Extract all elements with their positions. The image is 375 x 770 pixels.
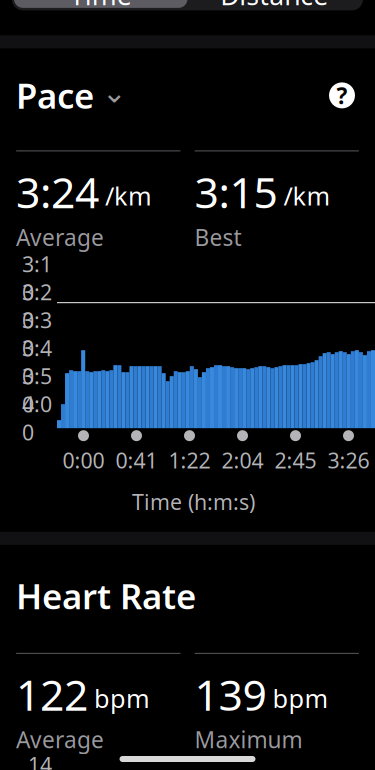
staticText: 1:22 — [168, 446, 210, 474]
staticText: 3:24 — [16, 163, 99, 220]
staticText: bpm — [94, 681, 150, 715]
staticText: 2:04 — [221, 446, 263, 474]
staticText: Best — [194, 222, 241, 252]
staticText: 0:00 — [62, 446, 104, 474]
staticText: 2:45 — [274, 446, 316, 474]
staticText: Average — [16, 724, 104, 755]
staticText: 139 — [194, 666, 266, 723]
staticText: Distance — [220, 0, 328, 13]
staticText: 3:20 — [22, 278, 52, 334]
staticText: 3:10 — [22, 250, 52, 306]
staticText: /km — [105, 179, 152, 212]
staticText: 3:40 — [22, 334, 52, 390]
staticText: Maximum — [194, 724, 302, 755]
button[interactable]: Time — [14, 0, 187, 8]
staticText: Average — [16, 222, 104, 252]
staticText: ? — [336, 80, 347, 110]
staticText: 3:15 — [194, 163, 277, 220]
staticText: 122 — [16, 666, 88, 723]
button[interactable]: Pace — [16, 70, 127, 120]
staticText: Heart Rate — [16, 573, 196, 619]
staticText: 4:00 — [22, 390, 52, 446]
staticText: ⌄ — [102, 76, 127, 109]
button[interactable]: Help about Pace — [325, 78, 359, 112]
staticText: 3:50 — [22, 362, 52, 418]
staticText: bpm — [272, 681, 328, 715]
staticText: 3:30 — [22, 306, 52, 362]
staticText: /km — [283, 179, 330, 212]
button[interactable]: Distance — [187, 0, 361, 8]
staticText: 0:41 — [115, 446, 157, 474]
staticText: Pace — [16, 72, 94, 118]
staticText: Time — [70, 0, 132, 13]
staticText: 140 — [28, 750, 52, 770]
staticText: 3:26 — [327, 446, 369, 474]
staticText: Time (h:m:s) — [132, 487, 255, 516]
